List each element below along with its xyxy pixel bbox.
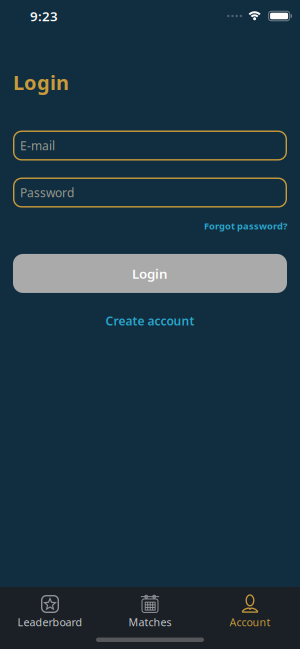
staticText: Forgot password?: [204, 220, 287, 232]
button[interactable]: Forgot password?: [204, 220, 287, 232]
textField[interactable]: E-mail: [20, 138, 280, 153]
staticText: Account: [229, 615, 270, 629]
button[interactable]: Login: [13, 254, 287, 293]
secureTextField[interactable]: Password: [20, 185, 280, 200]
button[interactable]: Create account: [105, 313, 194, 329]
staticText: E-mail: [20, 138, 55, 153]
staticText: Password: [20, 185, 74, 200]
button[interactable]: Account: [200, 594, 300, 629]
staticText: Matches: [128, 615, 171, 629]
staticText: Login: [132, 265, 168, 282]
button[interactable]: Leaderboard: [0, 594, 100, 629]
staticText: Create account: [105, 313, 194, 329]
staticText: Login: [13, 69, 69, 96]
staticText: 9:23: [30, 7, 58, 25]
button[interactable]: Matches: [100, 594, 200, 629]
staticText: Leaderboard: [17, 615, 82, 629]
